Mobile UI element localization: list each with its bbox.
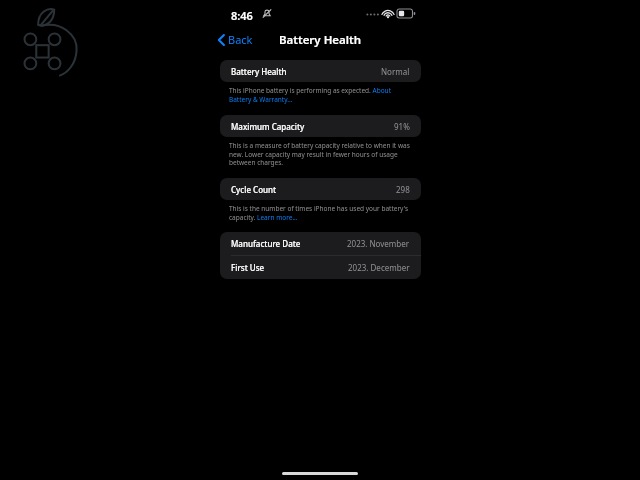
button[interactable]: This iPhone battery is performing as exp… (229, 86, 413, 104)
staticText: Manufacture Date (231, 238, 301, 249)
staticText: Cycle Count (231, 184, 277, 195)
staticText: 2023. November (347, 238, 410, 249)
staticText: This is a measure of battery capacity re… (229, 141, 413, 167)
staticText: Back (228, 32, 253, 47)
button[interactable]: Cycle Count (220, 178, 421, 200)
staticText: Battery Health (231, 66, 287, 77)
button[interactable]: This is the number of times iPhone has u… (229, 204, 413, 222)
staticText: First Use (231, 262, 265, 273)
button[interactable]: This is a measure of battery capacity re… (229, 141, 413, 167)
staticText: 2023. December (348, 262, 410, 273)
button[interactable]: Manufacture Date (220, 232, 421, 255)
staticText: Maximum Capacity (231, 121, 305, 132)
staticText: 8:46 (231, 8, 253, 23)
staticText: This is the number of times iPhone has u… (229, 204, 413, 222)
staticText: 298 (396, 184, 410, 195)
staticText: This iPhone battery is performing as exp… (229, 86, 413, 104)
button[interactable]: Back (214, 29, 257, 50)
staticText: Normal (381, 66, 410, 77)
staticText: 91% (394, 121, 410, 132)
staticText: Battery Health (279, 32, 362, 48)
button[interactable]: First Use (220, 256, 421, 279)
button[interactable]: Battery Health (220, 60, 421, 82)
button[interactable]: Maximum Capacity (220, 115, 421, 137)
